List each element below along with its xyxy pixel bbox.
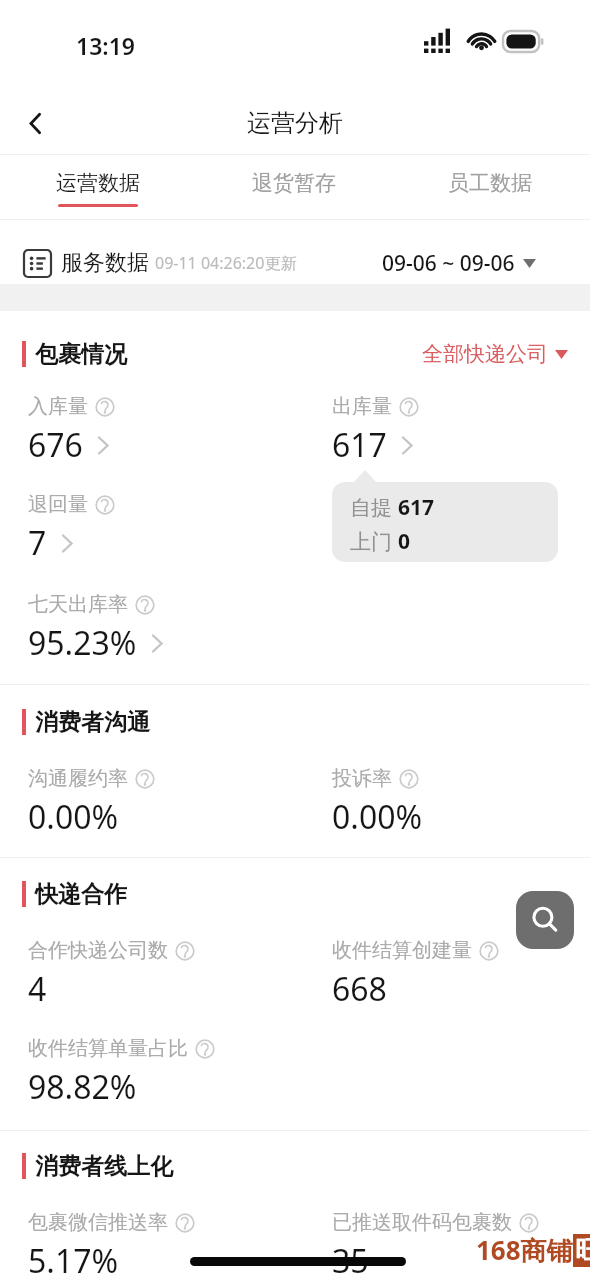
- staticText: 退回量: [28, 492, 88, 517]
- button[interactable]: 收件结算单量占比: [28, 1036, 215, 1109]
- button[interactable]: 合作快递公司数: [28, 938, 195, 1011]
- staticText: 旺: [575, 1234, 590, 1267]
- staticText: 5.17%: [28, 1239, 119, 1280]
- staticText: 收件结算单量占比: [28, 1036, 188, 1061]
- staticText: 0: [398, 527, 411, 556]
- staticText: 合作快递公司数: [28, 938, 168, 963]
- button[interactable]: 入库量: [28, 394, 115, 467]
- staticText: 包裹微信推送率: [28, 1210, 168, 1235]
- button[interactable]: 出库量: [332, 394, 419, 467]
- staticText: 09-06 ~ 09-06: [382, 249, 515, 278]
- button[interactable]: 收件结算创建量: [332, 938, 499, 1011]
- staticText: 668: [332, 967, 387, 1011]
- button[interactable]: 运营数据: [10, 158, 186, 218]
- button[interactable]: 包裹微信推送率: [28, 1210, 195, 1280]
- button[interactable]: 全部快递公司: [422, 341, 568, 367]
- staticText: 已推送取件码包裹数: [332, 1210, 512, 1235]
- button[interactable]: 09-06 ~ 09-06: [382, 245, 536, 281]
- staticText: 35: [332, 1239, 369, 1280]
- staticText: 收件结算创建量: [332, 938, 472, 963]
- staticText: 入库量: [28, 394, 88, 419]
- button[interactable]: 沟通履约率: [28, 766, 155, 839]
- staticText: 168商铺: [476, 1232, 573, 1268]
- button[interactable]: 七天出库率: [28, 592, 169, 665]
- staticText: 投诉率: [332, 766, 392, 791]
- button[interactable]: 员工数据: [402, 158, 578, 218]
- staticText: 快递合作: [35, 880, 127, 909]
- staticText: 出库量: [332, 394, 392, 419]
- button[interactable]: Search: [516, 891, 574, 949]
- button[interactable]: 已推送取件码包裹数: [332, 1210, 539, 1280]
- staticText: 员工数据: [448, 170, 532, 196]
- staticText: 七天出库率: [28, 592, 128, 617]
- staticText: 消费者沟通: [35, 708, 150, 737]
- staticText: 退货暂存: [252, 170, 336, 196]
- staticText: 服务数据: [61, 249, 149, 277]
- staticText: 上门: [350, 527, 398, 556]
- staticText: 包裹情况: [35, 340, 127, 369]
- staticText: 98.82%: [28, 1065, 137, 1109]
- staticText: 沟通履约率: [28, 766, 128, 791]
- staticText: 运营分析: [247, 108, 343, 138]
- staticText: 0.00%: [28, 795, 119, 839]
- staticText: 13:19: [76, 30, 135, 61]
- staticText: 7: [28, 521, 47, 565]
- staticText: 0.00%: [332, 795, 423, 839]
- button[interactable]: 服务数据: [24, 245, 297, 281]
- staticText: 运营数据: [56, 170, 140, 196]
- staticText: 消费者线上化: [35, 1152, 173, 1181]
- button[interactable]: 投诉率: [332, 766, 423, 839]
- staticText: 全部快递公司: [422, 341, 548, 367]
- staticText: 自提: [350, 493, 398, 522]
- staticText: 617: [332, 423, 387, 467]
- staticText: 4: [28, 967, 47, 1011]
- staticText: 676: [28, 423, 83, 467]
- staticText: 617: [398, 493, 435, 522]
- staticText: 09-11 04:26:20更新: [155, 252, 297, 274]
- button[interactable]: 退货暂存: [206, 158, 382, 218]
- button[interactable]: 退回量: [28, 492, 115, 565]
- button[interactable]: Back: [6, 94, 64, 152]
- staticText: 95.23%: [28, 621, 137, 665]
